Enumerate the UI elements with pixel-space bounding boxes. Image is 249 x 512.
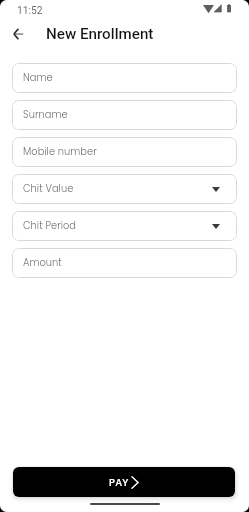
staticText: 11:52 — [17, 4, 43, 16]
staticText: Mobile number — [23, 145, 97, 159]
staticText: Amount — [23, 256, 62, 270]
button[interactable]: PAY — [13, 467, 235, 497]
staticText: Name — [23, 71, 53, 85]
staticText: PAY — [109, 475, 129, 489]
button[interactable]: Chit Value — [12, 174, 237, 204]
staticText: Chit Period — [23, 219, 77, 233]
button[interactable]: Mobile number — [12, 137, 237, 167]
button[interactable]: Back — [7, 23, 29, 45]
staticText: Chit Value — [23, 182, 74, 196]
staticText: Surname — [23, 108, 68, 122]
staticText: New Enrollment — [46, 25, 154, 43]
button[interactable]: Amount — [12, 248, 237, 278]
button[interactable]: Name — [12, 63, 237, 93]
button[interactable]: Surname — [12, 100, 237, 130]
button[interactable]: Chit Period — [12, 211, 237, 241]
